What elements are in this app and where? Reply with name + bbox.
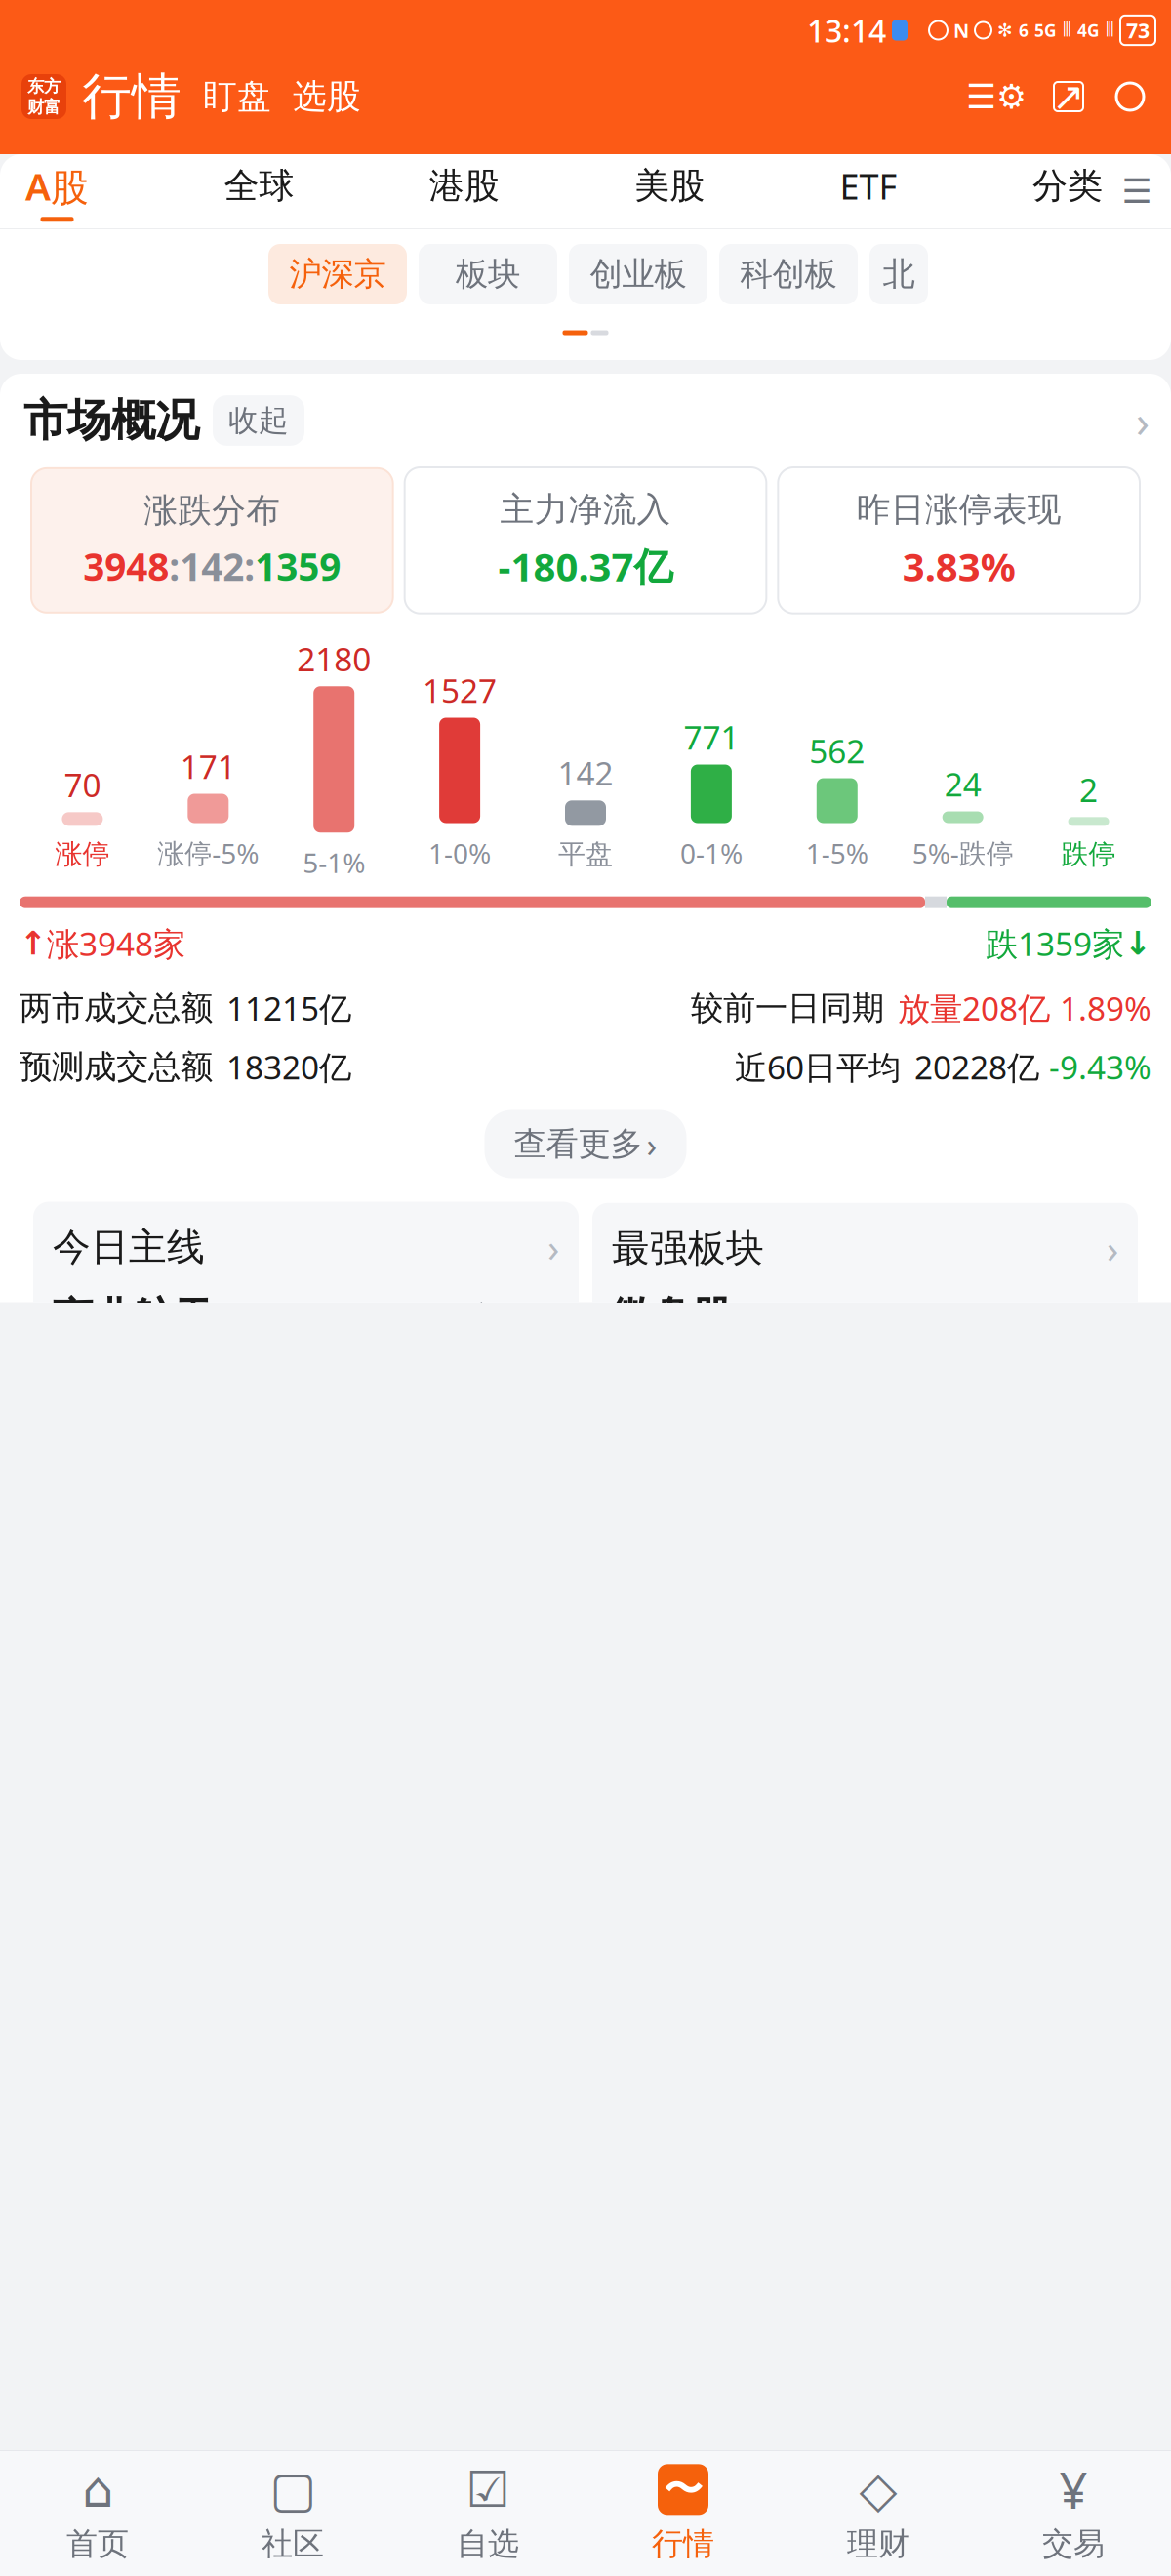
staticText: 171 xyxy=(180,745,236,788)
button[interactable]: ☑ xyxy=(390,2464,585,2563)
button[interactable]: 选股 xyxy=(293,76,361,117)
staticText: 财富 xyxy=(27,97,61,117)
staticText: ↗ xyxy=(1052,74,1085,119)
staticText: 全球 xyxy=(224,164,294,207)
staticText: 查看更多 xyxy=(514,1124,643,1164)
staticText: 北 xyxy=(883,254,915,294)
staticText: 盯盘 xyxy=(203,76,271,117)
button[interactable]: 全球 xyxy=(224,164,294,218)
staticText: 放量208亿 xyxy=(898,986,1050,1030)
staticText: 11215亿 xyxy=(226,986,351,1030)
staticText: 24 xyxy=(944,762,981,806)
button[interactable]: 沪深京 xyxy=(268,244,407,304)
staticText: 行情 xyxy=(82,66,182,127)
staticText: 科创板 xyxy=(740,254,837,294)
button[interactable]: ¥ xyxy=(976,2464,1171,2563)
staticText: 近60日平均 xyxy=(735,1045,901,1088)
staticText: 2 xyxy=(1079,768,1098,811)
staticText: 5%-跌停 xyxy=(912,835,1014,871)
button[interactable]: 美股 xyxy=(634,164,705,218)
button[interactable]: 港股 xyxy=(429,164,499,218)
button[interactable]: 科创板 xyxy=(719,244,858,304)
button[interactable]: 最强板块 xyxy=(592,1203,1138,1500)
staticText: 商业航天 xyxy=(53,1293,213,1342)
staticText: ⦀ xyxy=(1106,21,1114,40)
staticText: 预测成交总额 xyxy=(20,1047,213,1087)
staticText: :142: xyxy=(169,541,255,591)
staticText: 交易 xyxy=(1042,2525,1105,2563)
staticText: 3948 xyxy=(83,541,169,591)
button[interactable]: ETF xyxy=(840,163,897,220)
staticText: 美股 xyxy=(634,164,705,207)
staticText: ☰⚙ xyxy=(966,77,1027,116)
staticText: 涨跌分布 xyxy=(144,490,280,531)
button[interactable]: 盯盘 xyxy=(203,76,271,117)
staticText: 最强板块 xyxy=(612,1225,764,1272)
staticText: 平盘 xyxy=(558,837,613,871)
button[interactable]: 板块 xyxy=(419,244,557,304)
staticText: › xyxy=(646,1122,657,1167)
staticText: 5-1% xyxy=(303,844,365,881)
staticText: 创业板 xyxy=(590,254,686,294)
button[interactable]: 主力净流入 xyxy=(405,467,766,613)
button[interactable]: 涨跌分布 xyxy=(31,468,393,613)
button[interactable]: 北 xyxy=(869,244,928,304)
staticText: 首页 xyxy=(66,2525,129,2563)
staticText: ↓ xyxy=(1124,925,1151,962)
staticText: A股 xyxy=(25,161,89,211)
button[interactable]: 〜 xyxy=(585,2464,781,2563)
button[interactable]: 排序设置 xyxy=(966,77,1027,116)
staticText: 13:14 xyxy=(807,10,886,51)
staticText: 6 xyxy=(1019,19,1029,41)
staticText: 市场概况 xyxy=(23,393,199,448)
staticText: 沪深京 xyxy=(289,254,386,294)
staticText: 理财 xyxy=(847,2525,909,2563)
staticText: 涨停 xyxy=(55,837,110,871)
button[interactable]: 更多分类 xyxy=(1116,168,1157,215)
button[interactable]: ⌂ xyxy=(0,2464,195,2563)
staticText: 18320亿 xyxy=(226,1045,351,1088)
staticText: 昨日涨停表现 xyxy=(856,489,1061,530)
staticText: 5G xyxy=(1034,19,1057,41)
button[interactable]: 创业板 xyxy=(569,244,707,304)
staticText: 跌1359家 xyxy=(986,922,1124,965)
staticText: ⌂ xyxy=(82,2461,113,2518)
staticText: -9.43% xyxy=(1049,1045,1151,1088)
button[interactable]: 昨日涨停表现 xyxy=(778,467,1140,613)
staticText: 行情 xyxy=(652,2525,714,2563)
button[interactable]: ◇ xyxy=(781,2464,976,2563)
staticText: 涨停-5% xyxy=(157,835,259,871)
staticText: 选股 xyxy=(293,76,361,117)
staticText: › xyxy=(1136,391,1150,450)
button[interactable]: A股 xyxy=(25,161,89,222)
staticText: ☰ xyxy=(1122,172,1152,210)
staticText: 自选 xyxy=(457,2525,519,2563)
button[interactable]: 查看更多 xyxy=(485,1110,686,1178)
staticText: 70 xyxy=(64,763,101,806)
button[interactable]: 搜索 xyxy=(1110,77,1150,116)
button[interactable]: ▢ xyxy=(195,2464,390,2563)
staticText: 1-0% xyxy=(428,835,491,871)
staticText: 主力净流入 xyxy=(500,489,671,530)
staticText: 〜 xyxy=(664,2466,703,2513)
button[interactable]: 分类 xyxy=(1032,164,1103,218)
staticText: 3.83% xyxy=(902,540,1016,592)
button[interactable]: 市场概况 xyxy=(0,374,1171,467)
button[interactable]: 分享 xyxy=(1052,80,1085,113)
staticText: 142 xyxy=(558,751,613,795)
button[interactable]: 今日主线 xyxy=(33,1202,579,1501)
staticText: 东方 xyxy=(27,76,61,97)
